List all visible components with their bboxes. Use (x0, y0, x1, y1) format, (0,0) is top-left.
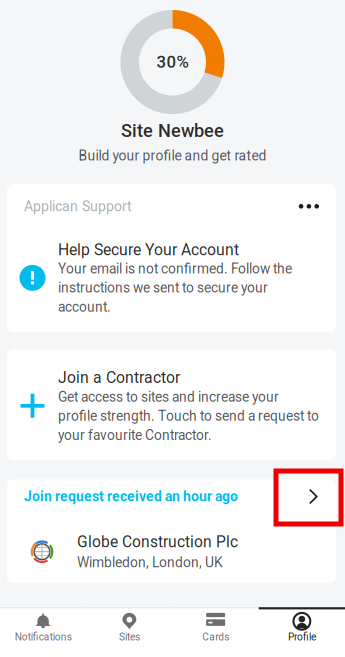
staticText: Help Secure Your Account (58, 241, 239, 259)
button[interactable]: Profile (259, 607, 345, 657)
staticText: Join a Contractor (58, 368, 180, 387)
staticText: Get access to sites and increase your pr… (58, 389, 319, 443)
staticText: Your email is not confirmed. Follow the … (58, 261, 292, 315)
staticText: Notifications (15, 631, 72, 643)
staticText: Profile (288, 631, 316, 643)
button[interactable]: Cards (172, 607, 259, 657)
staticText: Sites (119, 631, 140, 643)
staticText: Applican Support (24, 198, 132, 215)
staticText: Join request received an hour ago (24, 488, 238, 505)
staticText: Build your profile and get rated (78, 147, 266, 164)
button[interactable]: More options (277, 198, 319, 215)
button[interactable]: Sites (86, 607, 172, 657)
staticText: Cards (202, 631, 229, 643)
staticText: Globe Construction Plc (77, 533, 238, 551)
staticText: 30% (156, 52, 188, 72)
staticText: Wimbledon, London, UK (77, 554, 223, 571)
button[interactable]: Notifications (0, 607, 86, 657)
staticText: Site Newbee (121, 120, 224, 141)
button[interactable]: Join request received an hour ago (0, 479, 345, 583)
